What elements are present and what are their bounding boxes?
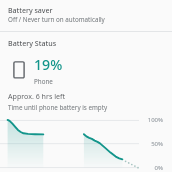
staticText: Battery Status [8, 38, 57, 48]
button[interactable]: Battery saver [0, 0, 172, 30]
staticText: 100% [143, 116, 163, 124]
staticText: 50% [143, 140, 163, 148]
staticText: Phone [34, 77, 53, 86]
staticText: Battery saver [8, 6, 53, 16]
staticText: Time until phone battery is empty [8, 103, 108, 112]
staticText: Off / Never turn on automatically [8, 15, 105, 24]
staticText: 0% [143, 164, 163, 172]
other: Phone battery level [12, 59, 26, 81]
staticText: 19% [34, 55, 63, 74]
staticText: Approx. 6 hrs left [8, 91, 65, 101]
